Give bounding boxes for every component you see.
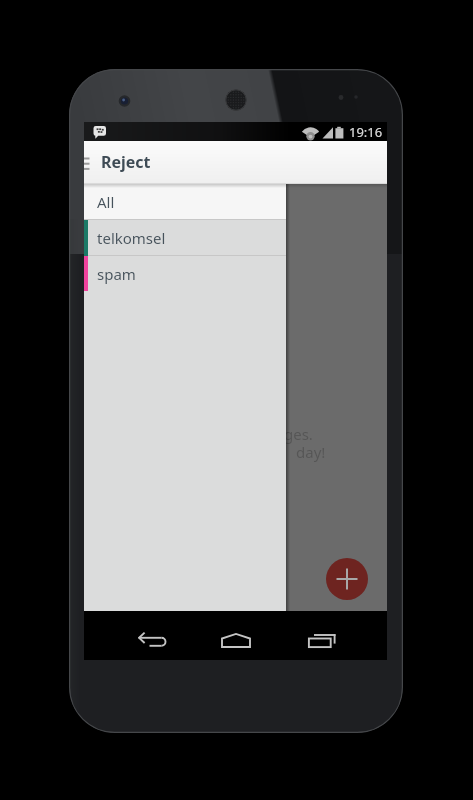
staticText: telkomsel: [97, 228, 166, 248]
staticText: Reject: [101, 151, 151, 173]
staticText: All: [97, 192, 115, 212]
staticText: 19:16: [349, 123, 383, 141]
button[interactable]: All: [84, 184, 286, 219]
button[interactable]: [326, 558, 368, 600]
button[interactable]: spam: [84, 256, 286, 291]
button[interactable]: telkomsel: [84, 220, 286, 255]
button[interactable]: [279, 611, 364, 660]
staticText: ges.: [284, 424, 313, 444]
staticText: spam: [97, 264, 136, 284]
button[interactable]: [193, 611, 278, 660]
button[interactable]: [110, 611, 195, 660]
button[interactable]: Reject: [84, 141, 387, 184]
staticText: day!: [296, 442, 326, 462]
